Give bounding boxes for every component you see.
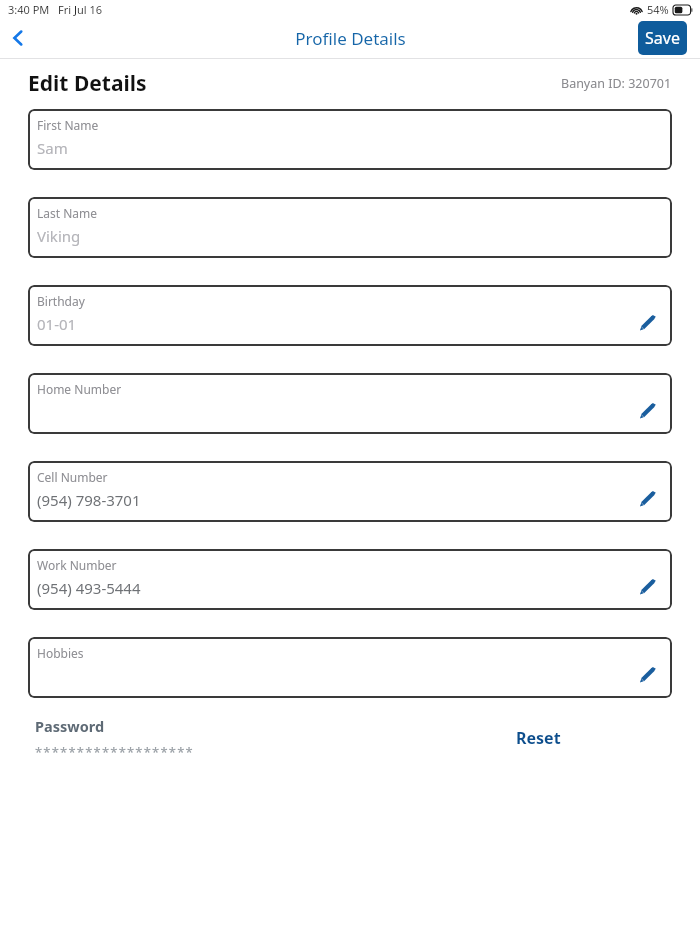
staticText: ******************* [35, 743, 194, 761]
staticText: Cell Number [37, 469, 108, 485]
button[interactable]: Edit Cell Number [634, 485, 660, 511]
staticText: Sam [37, 138, 68, 158]
staticText: 3:40 PM [8, 2, 50, 17]
staticText: Password [35, 716, 105, 736]
button[interactable]: Cell Number [28, 461, 672, 522]
staticText: Birthday [37, 293, 85, 309]
button[interactable]: Home Number [28, 373, 672, 434]
staticText: 01-01 [37, 314, 77, 334]
button[interactable]: Edit Hobbies [634, 661, 660, 687]
staticText: (954) 798-3701 [37, 490, 141, 510]
button[interactable]: Hobbies [28, 637, 672, 698]
staticText: Reset [516, 727, 561, 749]
staticText: Home Number [37, 381, 122, 397]
button[interactable]: Reset [512, 723, 565, 753]
button[interactable]: Edit Home Number [634, 397, 660, 423]
button[interactable]: First Name [28, 109, 672, 170]
button[interactable]: Last Name [28, 197, 672, 258]
button[interactable]: Edit Work Number [634, 573, 660, 599]
staticText: 54% [647, 2, 669, 17]
staticText: Work Number [37, 557, 117, 573]
button[interactable]: Edit Birthday [634, 309, 660, 335]
staticText: Viking [37, 226, 81, 246]
staticText: Edit Details [28, 69, 147, 98]
staticText: First Name [37, 117, 99, 133]
staticText: Fri Jul 16 [58, 2, 103, 17]
staticText: Hobbies [37, 645, 84, 661]
staticText: (954) 493-5444 [37, 578, 141, 598]
staticText: Save [645, 27, 680, 49]
staticText: Last Name [37, 205, 98, 221]
staticText: Banyan ID: 320701 [561, 75, 672, 92]
button[interactable]: Work Number [28, 549, 672, 610]
button[interactable]: Back [2, 22, 34, 54]
staticText: Profile Details [295, 27, 406, 50]
button[interactable]: Birthday [28, 285, 672, 346]
button[interactable]: Save [638, 21, 687, 55]
